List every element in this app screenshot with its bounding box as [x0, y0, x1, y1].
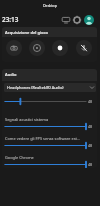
staticText: Google Chrome [5, 155, 34, 160]
staticText: 23:13 [2, 15, 19, 24]
button[interactable]: Display [61, 15, 71, 25]
staticText: Segnali acustici sistema [5, 117, 49, 122]
button[interactable]: Start recording [52, 40, 68, 56]
staticText: Headphones (Realtek(R) Audio) [7, 85, 85, 90]
staticText: 48 [88, 162, 93, 167]
button[interactable]: Microphone [76, 40, 92, 56]
button[interactable]: Record last 30 seconds [29, 40, 45, 56]
staticText: 48 [88, 143, 93, 148]
button[interactable]: Settings [72, 15, 82, 25]
button[interactable]: Headphones (Realtek(R) Audio) [4, 83, 96, 92]
staticText: Desktop [43, 3, 57, 8]
staticText: Acquisizione del gioco [5, 30, 49, 35]
button[interactable]: Screenshot [6, 40, 22, 56]
staticText: 48 [88, 124, 93, 129]
button[interactable]: Account [84, 15, 94, 25]
staticText: Come vedere gli FPS senza software est..… [5, 136, 85, 141]
staticText: Audio [5, 72, 17, 77]
staticText: 48 [88, 99, 93, 104]
